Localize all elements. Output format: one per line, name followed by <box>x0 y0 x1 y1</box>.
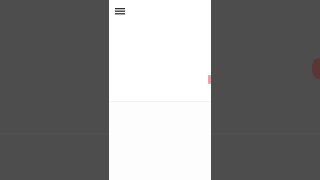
button[interactable]: Open navigation menu <box>111 3 129 21</box>
